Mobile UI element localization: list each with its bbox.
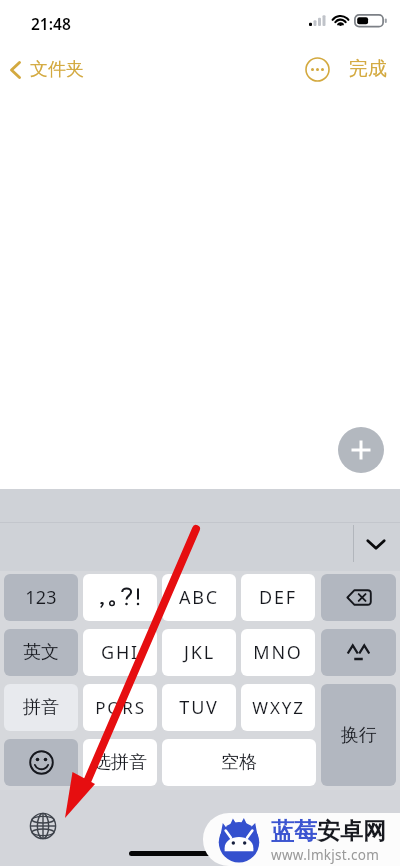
button[interactable]: 英文 [4, 629, 78, 676]
button[interactable] [321, 629, 396, 676]
staticText: TUV [179, 695, 219, 720]
button[interactable]: 完成 [349, 57, 387, 81]
staticText: DEF [259, 585, 297, 610]
staticText: 安卓网 [317, 817, 386, 846]
staticText: 空格 [221, 751, 257, 774]
button[interactable]: PQRS [83, 684, 157, 731]
staticText: MNO [253, 640, 303, 665]
staticText: JKL [184, 640, 215, 665]
button[interactable]: TUV [162, 684, 236, 731]
staticText: 文件夹 [30, 58, 84, 81]
button[interactable]: ABC [162, 574, 236, 621]
button[interactable]: More options [303, 55, 331, 83]
button[interactable] [4, 739, 78, 786]
button[interactable]: WXYZ [241, 684, 315, 731]
button[interactable]: 选拼音 [83, 739, 157, 786]
staticText: GHI [101, 640, 139, 665]
staticText: 换行 [341, 724, 377, 747]
button[interactable]: 拼音 [4, 684, 78, 731]
staticText: 拼音 [23, 696, 59, 719]
staticText: 选拼音 [93, 751, 147, 774]
button[interactable]: MNO [241, 629, 315, 676]
button[interactable]: GHI [83, 629, 157, 676]
staticText: 123 [25, 585, 57, 610]
staticText: 21:48 [31, 13, 71, 34]
staticText: 英文 [23, 641, 59, 664]
button[interactable] [83, 574, 157, 621]
staticText: WXYZ [252, 696, 305, 719]
button[interactable]: 空格 [162, 739, 316, 786]
button[interactable]: Add [338, 427, 384, 473]
button[interactable]: 文件夹 [5, 53, 89, 86]
staticText: www.lmkjst.com [271, 846, 380, 864]
staticText: PQRS [95, 696, 146, 719]
staticText: 蓝莓 [271, 817, 317, 846]
button[interactable]: JKL [162, 629, 236, 676]
button[interactable]: 123 [4, 574, 78, 621]
button[interactable]: Change keyboard [25, 808, 60, 843]
button[interactable]: Hide keyboard [358, 526, 394, 562]
button[interactable]: 换行 [321, 684, 396, 786]
staticText: ABC [179, 585, 219, 610]
staticText: 完成 [349, 57, 387, 81]
button[interactable] [321, 574, 396, 621]
button[interactable]: DEF [241, 574, 315, 621]
